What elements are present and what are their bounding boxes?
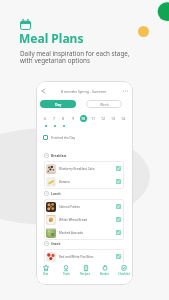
button[interactable]: Whole Wheat Bread xyxy=(46,213,122,226)
staticText: 14 xyxy=(121,116,126,121)
button[interactable]: Week xyxy=(86,100,122,108)
staticText: Track xyxy=(63,272,70,276)
button[interactable]: 11 xyxy=(88,114,98,122)
staticText: Salmon Patties xyxy=(59,205,116,209)
button[interactable]: Toggle Whole Wheat Bread xyxy=(116,217,121,222)
staticText: Breakfast xyxy=(51,154,67,158)
staticText: 11 xyxy=(91,116,96,121)
button[interactable]: Basket xyxy=(95,263,114,285)
button[interactable]: Toggle Mashed Avocado xyxy=(116,230,121,235)
staticText: Meal Plans xyxy=(19,30,84,46)
button[interactable]: 10 xyxy=(78,114,88,122)
staticText: Red and White Pita Bites xyxy=(59,255,116,259)
button[interactable]: Day xyxy=(40,100,76,108)
staticText: Finished the Day xyxy=(51,136,76,140)
staticText: Diet xyxy=(43,272,49,276)
button[interactable]: Back xyxy=(39,87,47,95)
button[interactable]: 12 xyxy=(98,114,108,122)
button[interactable]: Toggle Blueberry Breakfast Cake xyxy=(116,166,121,171)
staticText: Mashed Avocado xyxy=(59,231,116,235)
button[interactable]: 13 xyxy=(108,114,118,122)
staticText: Week xyxy=(100,102,109,107)
button[interactable]: 14 xyxy=(118,114,128,122)
button[interactable]: Mashed Avocado xyxy=(46,226,122,239)
staticText: 8 months Spring - Summer xyxy=(61,89,107,94)
staticText: Lunch xyxy=(51,192,61,196)
button[interactable]: Finished the Day xyxy=(43,134,133,141)
staticText: 13 xyxy=(111,116,116,121)
button[interactable]: Salmon Patties xyxy=(46,200,122,213)
button[interactable]: 9 xyxy=(68,114,78,122)
button[interactable]: Red and White Pita Bites xyxy=(46,250,122,263)
staticText: 6 xyxy=(44,116,47,121)
button[interactable]: Toggle Banana xyxy=(116,179,121,184)
staticText: Whole Wheat Bread xyxy=(59,218,116,222)
button[interactable]: Diet xyxy=(36,263,56,285)
staticText: 10 xyxy=(81,116,86,121)
button[interactable]: Toggle Red and White Pita Bites xyxy=(116,254,121,259)
staticText: 9 xyxy=(72,116,75,121)
staticText: 8 xyxy=(62,116,65,121)
staticText: 7 xyxy=(53,116,56,121)
staticText: Basket xyxy=(100,272,109,276)
button[interactable]: More options xyxy=(121,87,129,95)
button[interactable]: 6 xyxy=(41,114,50,122)
button[interactable]: 8 xyxy=(59,114,68,122)
button[interactable]: Blueberry Breakfast Cake xyxy=(46,162,122,175)
staticText: Checklist xyxy=(118,272,130,276)
staticText: Recipes xyxy=(80,272,91,276)
staticText: Blueberry Breakfast Cake xyxy=(59,167,116,171)
staticText: Snack xyxy=(51,242,61,246)
button[interactable]: Recipes xyxy=(76,263,95,285)
button[interactable]: Checklist xyxy=(114,263,133,285)
button[interactable]: Track xyxy=(56,263,76,285)
staticText: 12 xyxy=(101,116,106,121)
staticText: Banana xyxy=(59,180,116,184)
button[interactable]: Banana xyxy=(46,175,122,188)
button[interactable]: 7 xyxy=(50,114,59,122)
button[interactable]: Toggle Salmon Patties xyxy=(116,204,121,209)
staticText: Daily meal inspiration for each stage, w… xyxy=(20,49,130,65)
staticText: Day xyxy=(55,102,62,107)
